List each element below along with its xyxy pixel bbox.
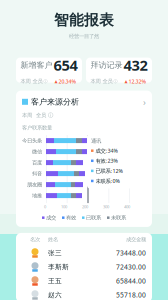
staticText: 已联系 <box>86 214 101 221</box>
staticText: 65844.00 <box>116 276 146 285</box>
staticText: 20.34% <box>58 78 76 85</box>
staticText: 本周 <box>22 112 32 119</box>
staticText: 654 <box>53 55 77 75</box>
staticText: 55718.00 <box>116 290 146 299</box>
staticText: 432 <box>123 55 147 75</box>
staticText: ▲ <box>124 79 127 84</box>
button[interactable]: 王五 <box>16 274 152 288</box>
button[interactable]: 新增客户 <box>16 58 82 83</box>
staticText: 地推 <box>32 192 42 199</box>
staticText: 拜访记录 <box>90 60 122 70</box>
staticText: 未联系: 0% <box>95 177 119 184</box>
staticText: 300 <box>103 204 109 209</box>
staticText: 未联系 <box>111 214 126 221</box>
staticText: 通讯 <box>91 138 101 144</box>
staticText: 100 <box>61 204 67 209</box>
staticText: 名次 <box>30 236 40 243</box>
staticText: 成交 <box>46 214 56 221</box>
staticText: 成交: 34% <box>95 147 117 154</box>
staticText: 客户来源分析 <box>31 97 79 107</box>
staticText: 有效: 23% <box>95 157 117 164</box>
staticText: 经营一目了然 <box>69 33 99 40</box>
staticText: 本周 <box>20 78 30 85</box>
staticText: 400 <box>124 204 130 209</box>
staticText: 新增客户 <box>20 60 52 70</box>
staticText: 72430.00 <box>116 262 146 271</box>
staticText: 姓名 <box>48 236 58 243</box>
staticText: 0 <box>44 204 46 209</box>
staticText: 微信 <box>32 148 42 155</box>
staticText: 赵六 <box>48 291 62 299</box>
staticText: 智能报表 <box>54 11 114 29</box>
button[interactable]: 张三 <box>16 246 152 260</box>
staticText: 全员 <box>32 78 42 85</box>
staticText: › <box>143 96 146 108</box>
staticText: 全员 <box>102 78 112 85</box>
staticText: 12.32% <box>128 78 146 85</box>
staticText: 朋友圈 <box>27 181 42 188</box>
staticText: 本周 <box>90 78 100 85</box>
button[interactable]: 赵六 <box>16 288 152 300</box>
staticText: 全员 ⓘ <box>36 112 53 119</box>
button[interactable]: 李斯斯 <box>16 260 152 274</box>
staticText: 已联系: 12% <box>95 167 122 174</box>
staticText: ⓘ <box>43 79 47 84</box>
staticText: 抖音 <box>32 170 42 177</box>
staticText: 客户联系数量 <box>22 124 52 131</box>
staticText: 今日头条 <box>22 137 42 144</box>
staticText: 有效 <box>66 214 76 221</box>
button[interactable]: 拜访记录 <box>86 58 152 83</box>
staticText: 李斯斯 <box>48 263 69 271</box>
staticText: 王五 <box>48 277 62 285</box>
staticText: ▲ <box>54 79 57 84</box>
staticText: 百度 <box>32 159 42 166</box>
staticText: 200 <box>82 204 88 209</box>
staticText: ⓘ <box>113 79 117 84</box>
staticText: 73448.00 <box>116 248 146 257</box>
staticText: 张三 <box>48 249 62 257</box>
staticText: 成交金额 <box>126 236 146 243</box>
